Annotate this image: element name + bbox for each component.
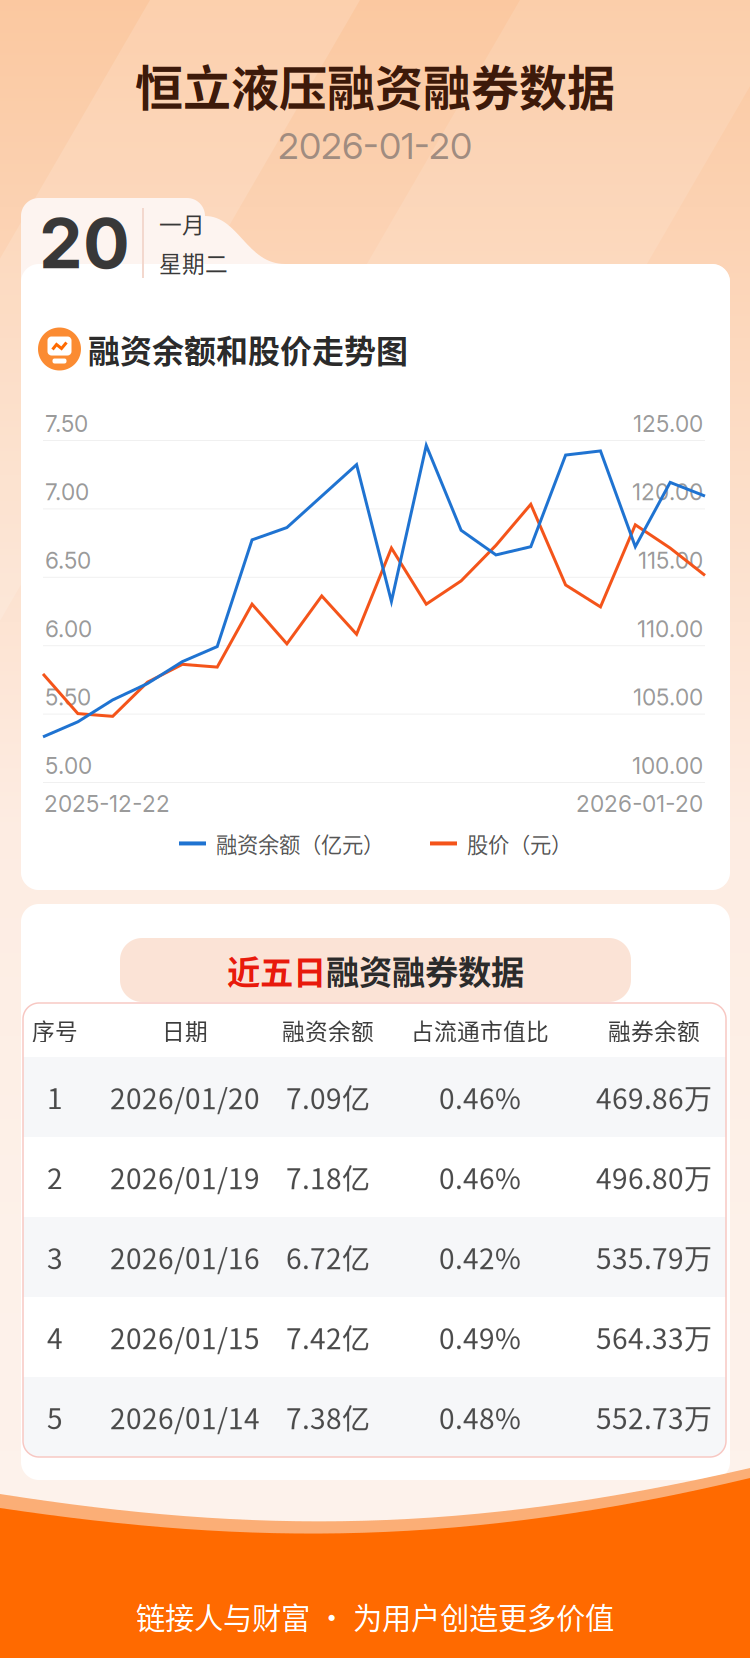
staticText: 5 [47, 1397, 63, 1437]
staticText: 5.50 [45, 684, 91, 711]
staticText: 7.18亿 [286, 1157, 370, 1197]
staticText: 2026/01/16 [110, 1237, 260, 1277]
staticText: 6.00 [45, 615, 92, 643]
staticText: 日期 [162, 1014, 208, 1046]
staticText: 564.33万 [596, 1317, 712, 1357]
staticText: 552.73万 [596, 1397, 712, 1437]
staticText: 融券余额 [608, 1014, 700, 1046]
staticText: 496.80万 [596, 1157, 712, 1197]
staticText: 2026-01-20 [278, 124, 472, 168]
staticText: 120.00 [632, 478, 703, 506]
staticText: 535.79万 [596, 1237, 712, 1277]
staticText: 2026/01/14 [110, 1397, 260, 1437]
staticText: 0.46% [439, 1157, 521, 1197]
staticText: 星期二 [159, 246, 228, 279]
staticText: 469.86万 [596, 1077, 712, 1117]
staticText: 110.00 [637, 615, 703, 643]
staticText: 7.42亿 [286, 1317, 370, 1357]
staticText: 2026/01/19 [110, 1157, 260, 1197]
staticText: 链接人与财富 · 为用户创造更多价值 [136, 1595, 614, 1637]
staticText: 占流通市值比 [411, 1014, 549, 1046]
staticText: 5.00 [45, 752, 92, 779]
staticText: 1 [47, 1077, 63, 1117]
staticText: 105.00 [633, 684, 703, 711]
staticText: 股价（元） [467, 828, 572, 859]
staticText: 7.50 [45, 410, 88, 437]
staticText: 融资余额 [282, 1014, 374, 1046]
staticText: 2026-01-20 [576, 790, 703, 817]
staticText: 6.72亿 [286, 1237, 370, 1277]
staticText: 一月 [159, 207, 205, 240]
staticText: 7.09亿 [286, 1077, 370, 1117]
staticText: 0.48% [439, 1397, 521, 1437]
staticText: 融资余额（亿元） [216, 828, 384, 859]
staticText: 融资余额和股价走势图 [88, 326, 408, 372]
staticText: 7.00 [45, 478, 89, 506]
staticText: 2026/01/15 [110, 1317, 260, 1357]
staticText: 2026/01/20 [110, 1077, 260, 1117]
staticText: 3 [47, 1237, 63, 1277]
staticText: 融资融券数据 [326, 946, 524, 994]
staticText: 0.46% [439, 1077, 521, 1117]
staticText: 0.42% [439, 1237, 521, 1277]
staticText: 2 [47, 1157, 63, 1197]
staticText: 7.38亿 [286, 1397, 370, 1437]
staticText: 20 [39, 201, 130, 285]
staticText: 100.00 [632, 752, 703, 779]
staticText: 125.00 [633, 410, 703, 437]
staticText: 近五日 [227, 946, 326, 994]
staticText: 2025-12-22 [44, 790, 170, 817]
staticText: 6.50 [45, 547, 91, 574]
staticText: 115.00 [638, 547, 703, 574]
staticText: 0.49% [439, 1317, 521, 1357]
staticText: 序号 [32, 1014, 78, 1046]
staticText: 4 [47, 1317, 63, 1357]
staticText: 恒立液压融资融券数据 [135, 50, 615, 119]
